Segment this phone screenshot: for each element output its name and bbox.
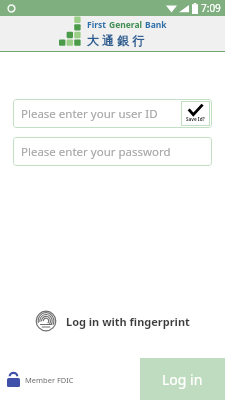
- staticText: Save Id?: [186, 116, 205, 122]
- staticText: Bank: [145, 19, 167, 31]
- staticText: Member FDIC: [25, 375, 74, 385]
- button[interactable]: Please enter your password: [13, 137, 212, 166]
- staticText: 大 通 銀 行: [87, 32, 145, 48]
- staticText: Log in: [162, 370, 203, 389]
- staticText: General: [109, 19, 145, 31]
- other: Member FDIC: [7, 372, 20, 387]
- staticText: Please enter your user ID: [21, 106, 158, 122]
- button[interactable]: Log in: [140, 358, 225, 400]
- button[interactable]: Member FDIC: [7, 372, 74, 387]
- button[interactable]: Please enter your user ID: [13, 99, 212, 128]
- staticText: First: [87, 19, 109, 31]
- button[interactable]: Save Id?: [181, 101, 210, 126]
- staticText: Please enter your password: [21, 144, 171, 160]
- staticText: Log in with fingerprint: [66, 314, 190, 329]
- button[interactable]: Log in with fingerprint: [0, 310, 225, 332]
- staticText: 7:09: [201, 1, 221, 15]
- other: Log in with fingerprint: [35, 310, 57, 332]
